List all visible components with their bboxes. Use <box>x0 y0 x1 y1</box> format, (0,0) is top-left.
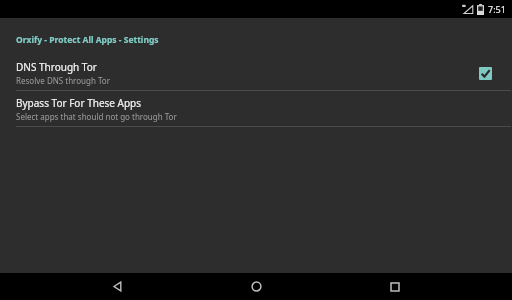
button[interactable]: Home <box>234 273 278 300</box>
other: Mobile signal <box>462 4 473 14</box>
other: Battery <box>477 4 484 15</box>
staticText: DNS Through Tor <box>16 60 97 74</box>
button[interactable]: DNS Through Tor <box>0 55 512 90</box>
button[interactable]: Bypass Tor For These Apps <box>0 91 512 126</box>
staticText: Resolve DNS through Tor <box>16 75 111 86</box>
button[interactable]: DNS Through Tor checkbox <box>474 62 496 84</box>
button[interactable]: Recent apps <box>373 273 417 300</box>
staticText: Select apps that should not go through T… <box>16 111 177 122</box>
staticText: Bypass Tor For These Apps <box>16 96 142 110</box>
staticText: Orxify - Protect All Apps - Settings <box>16 34 159 46</box>
staticText: 7:51 <box>488 3 506 15</box>
button[interactable]: Back <box>95 273 139 300</box>
